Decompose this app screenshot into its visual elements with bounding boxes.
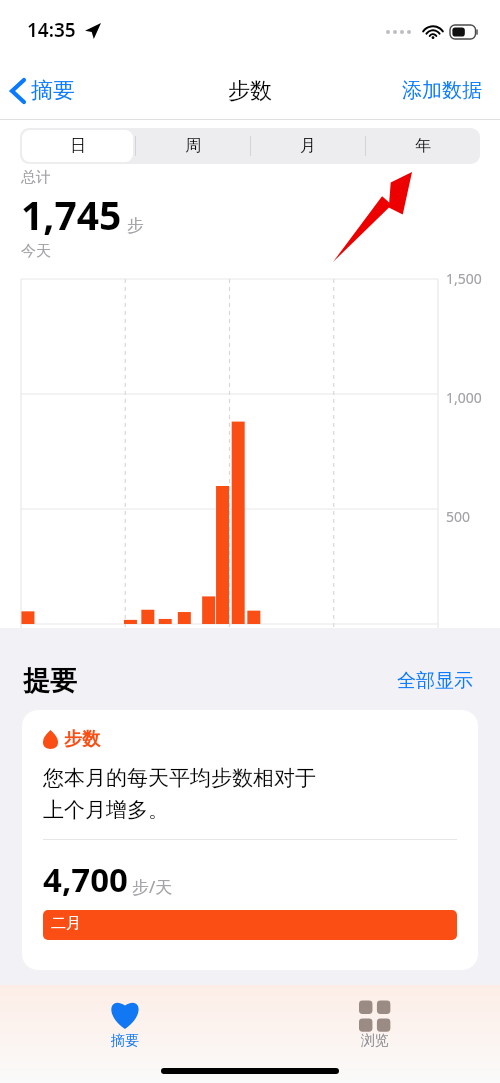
staticText: 年 bbox=[415, 136, 431, 156]
button[interactable]: 周 bbox=[135, 128, 250, 164]
button[interactable]: 摘要 bbox=[84, 995, 166, 1054]
staticText: 4,700 bbox=[43, 857, 128, 902]
button[interactable]: 日 bbox=[20, 128, 135, 164]
staticText: 周 bbox=[185, 136, 201, 156]
staticText: 上个月增多。 bbox=[43, 797, 169, 823]
staticText: 步/天 bbox=[132, 875, 173, 898]
staticText: 步 bbox=[127, 215, 144, 236]
button[interactable]: 年 bbox=[365, 128, 480, 164]
staticText: 今天 bbox=[21, 242, 51, 261]
staticText: 摘要 bbox=[31, 77, 75, 105]
staticText: 月 bbox=[300, 136, 316, 156]
button[interactable]: 全部显示 bbox=[393, 665, 477, 697]
button[interactable]: 摘要 bbox=[0, 71, 85, 111]
staticText: 您本月的每天平均步数相对于 bbox=[43, 765, 316, 791]
staticText: 步数 bbox=[64, 728, 100, 751]
staticText: 1,500 bbox=[446, 269, 482, 288]
button[interactable]: 添加数据 bbox=[384, 70, 500, 111]
staticText: 1,000 bbox=[446, 388, 482, 407]
staticText: 总计 bbox=[21, 168, 51, 187]
button[interactable]: 月 bbox=[250, 128, 365, 164]
staticText: 500 bbox=[446, 507, 471, 526]
staticText: 1,745 bbox=[21, 188, 122, 241]
staticText: 浏览 bbox=[361, 1032, 389, 1050]
staticText: 二月 bbox=[51, 914, 81, 933]
button[interactable]: 步数 bbox=[22, 710, 478, 970]
staticText: 14:35 bbox=[27, 17, 76, 43]
staticText: 日 bbox=[70, 136, 86, 156]
staticText: 步数 bbox=[228, 77, 272, 105]
staticText: 摘要 bbox=[111, 1032, 139, 1050]
staticText: 提要 bbox=[23, 664, 77, 698]
button[interactable]: 浏览 bbox=[335, 995, 415, 1054]
